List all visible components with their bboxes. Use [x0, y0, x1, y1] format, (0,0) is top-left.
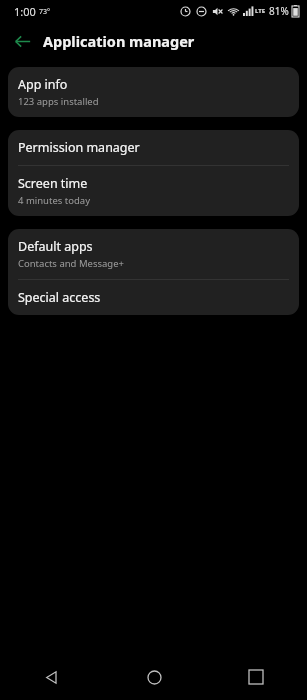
staticText: Special access — [18, 289, 101, 306]
staticText: 81% — [269, 4, 289, 18]
button[interactable]: App info — [8, 67, 299, 117]
staticText: 4 minutes today — [18, 194, 90, 207]
staticText: Application manager — [43, 31, 195, 51]
button[interactable]: Screen time — [8, 166, 299, 216]
button[interactable]: Special access — [8, 280, 299, 315]
staticText: 1:00 — [14, 4, 36, 19]
button[interactable]: Recents — [205, 654, 307, 700]
staticText: Screen time — [18, 175, 88, 192]
staticText: App info — [18, 76, 68, 93]
staticText: 123 apps installed — [18, 95, 99, 108]
button[interactable]: Default apps — [8, 229, 299, 279]
button[interactable]: Back — [6, 25, 38, 57]
button[interactable]: Home — [103, 654, 205, 700]
staticText: 73° — [39, 7, 51, 17]
staticText: Default apps — [18, 238, 93, 255]
button[interactable]: Permission manager — [8, 130, 299, 165]
staticText: Permission manager — [18, 139, 140, 156]
button[interactable]: Back — [0, 654, 103, 700]
staticText: Contacts and Message+ — [18, 257, 124, 270]
staticText: LTE — [255, 7, 266, 15]
